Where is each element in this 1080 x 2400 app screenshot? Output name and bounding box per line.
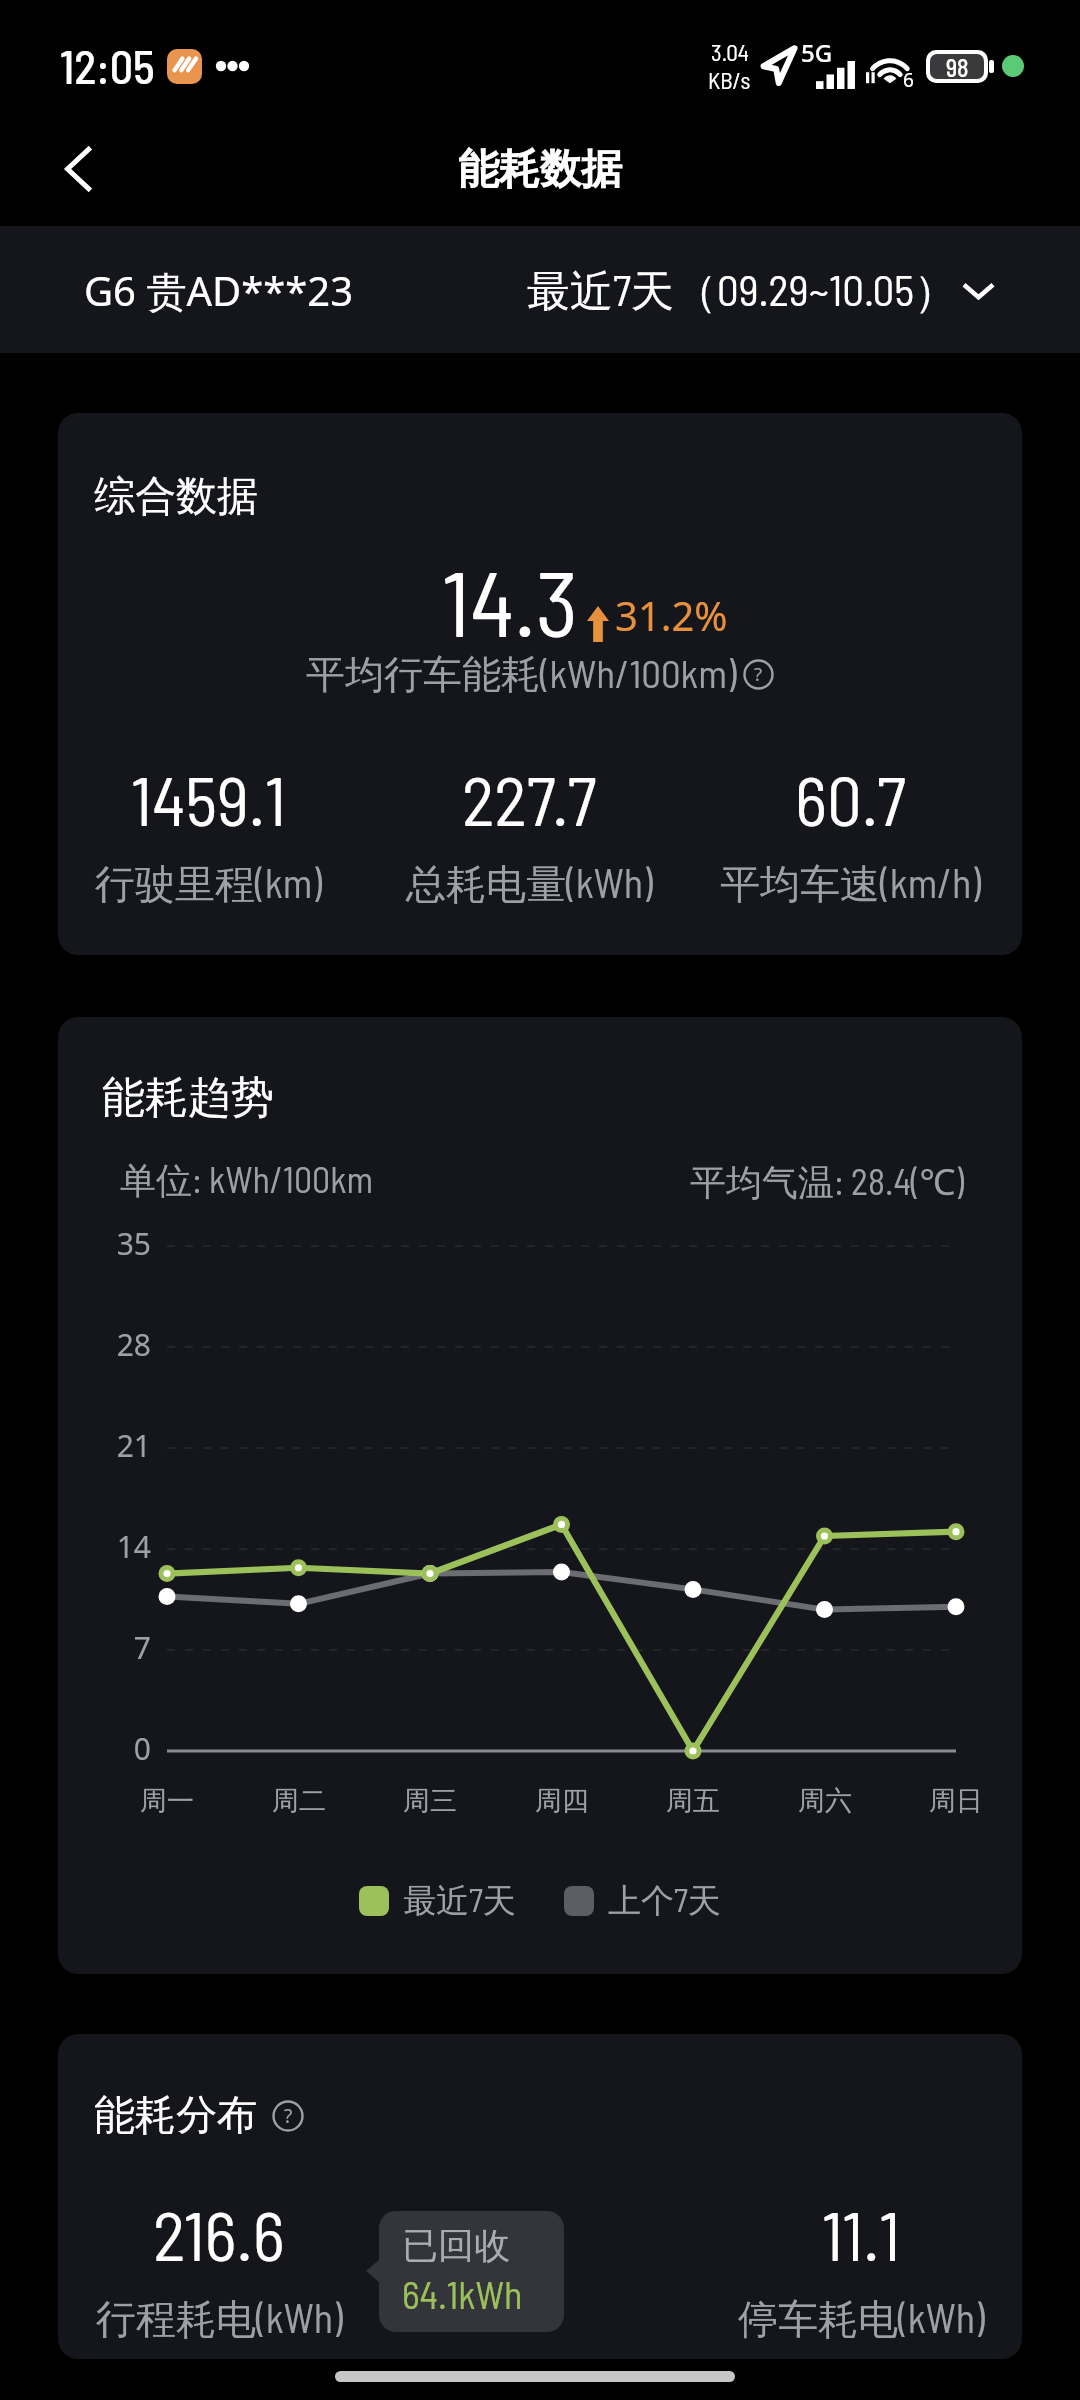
staticText: KB/s: [708, 66, 751, 94]
staticText: 行驶里程(km): [95, 858, 322, 910]
staticText: 行程耗电(kWh): [96, 2293, 343, 2345]
staticText: 综合数据: [94, 471, 258, 523]
staticText: 227.7: [462, 757, 597, 840]
staticText: 周三: [370, 1784, 490, 1818]
staticText: 周日: [896, 1784, 1016, 1818]
button[interactable]: Back: [36, 126, 122, 212]
staticText: 216.6: [153, 2192, 285, 2275]
staticText: 周二: [239, 1784, 359, 1818]
staticText: 总耗电量(kWh): [406, 858, 653, 910]
staticText: 12:05: [60, 38, 155, 93]
staticText: 能耗趋势: [102, 1071, 274, 1125]
staticText: 64.1kWh: [402, 2271, 523, 2317]
staticText: 14.3: [442, 545, 579, 655]
staticText: 最近7天（09.29~10.05）: [527, 263, 957, 319]
staticText: 周五: [633, 1784, 753, 1818]
staticText: 31.2%: [615, 588, 728, 642]
staticText: 已回收: [402, 2223, 510, 2268]
staticText: 21: [93, 1425, 151, 1466]
staticText: 28: [93, 1324, 151, 1365]
staticText: 能耗分布: [94, 2090, 258, 2142]
staticText: 周六: [765, 1784, 885, 1818]
staticText: 98: [946, 54, 969, 78]
staticText: 14: [93, 1526, 151, 1567]
staticText: ?: [754, 661, 763, 686]
staticText: ?: [284, 2102, 293, 2128]
staticText: 平均行车能耗(kWh/100km): [306, 649, 737, 700]
staticText: 单位: kWh/100km: [120, 1157, 374, 1204]
staticText: 平均车速(km/h): [720, 858, 981, 910]
staticText: 上个7天: [608, 1879, 721, 1922]
staticText: 周四: [502, 1784, 622, 1818]
staticText: 最近7天: [403, 1879, 516, 1922]
staticText: 3.04: [711, 38, 749, 66]
staticText: G6 贵AD***23: [84, 263, 354, 318]
staticText: 平均气温: 28.4(℃): [690, 1157, 964, 1206]
staticText: 1459.1: [131, 757, 286, 840]
staticText: 60.7: [795, 757, 906, 840]
staticText: 0: [93, 1728, 151, 1769]
staticText: 11.1: [822, 2192, 901, 2275]
button[interactable]: 最近7天（09.29~10.05）: [503, 226, 1057, 353]
staticText: 7: [93, 1627, 151, 1668]
staticText: 能耗数据: [458, 144, 622, 196]
staticText: 35: [93, 1223, 151, 1264]
staticText: 6: [903, 67, 914, 93]
staticText: 5G: [801, 36, 833, 69]
staticText: 周一: [107, 1784, 227, 1818]
staticText: 停车耗电(kWh): [738, 2293, 985, 2345]
